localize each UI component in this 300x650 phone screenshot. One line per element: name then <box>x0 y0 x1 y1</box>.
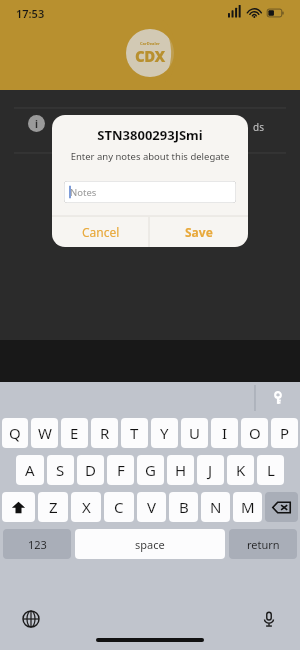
button[interactable]: E <box>61 418 88 448</box>
button[interactable]: J <box>197 455 224 485</box>
staticText: A <box>25 460 35 480</box>
button[interactable]: return <box>229 529 297 559</box>
button[interactable]: Z <box>38 492 68 522</box>
button[interactable]: Dictation <box>258 608 280 630</box>
button[interactable]: S <box>47 455 74 485</box>
staticText: STN3800293JSmi <box>52 126 248 144</box>
button[interactable]: K <box>227 455 254 485</box>
button[interactable]: Change keyboard <box>20 608 42 630</box>
staticText: U <box>189 423 200 443</box>
button[interactable]: space <box>75 529 225 559</box>
button[interactable]: I <box>211 418 238 448</box>
staticText: Notes <box>70 186 97 199</box>
button[interactable]: Q <box>2 418 28 448</box>
staticText: D <box>85 460 96 480</box>
button[interactable]: V <box>137 492 166 522</box>
button[interactable]: G <box>137 455 164 485</box>
button[interactable]: T <box>121 418 148 448</box>
staticText: T <box>130 423 139 443</box>
staticText: K <box>236 460 246 480</box>
staticText: I <box>222 423 228 443</box>
staticText: X <box>82 497 91 517</box>
staticText: G <box>145 460 156 480</box>
button[interactable]: F <box>107 455 134 485</box>
button[interactable]: L <box>257 455 284 485</box>
button[interactable]: Passwords <box>256 382 300 414</box>
staticText: E <box>70 423 79 443</box>
button[interactable]: H <box>167 455 194 485</box>
staticText: CarDealer <box>140 41 160 46</box>
staticText: O <box>249 423 261 443</box>
staticText: Q <box>9 423 21 443</box>
button[interactable]: Cancel <box>52 217 149 247</box>
button[interactable]: B <box>169 492 198 522</box>
staticText: space <box>135 537 165 552</box>
staticText: 123 <box>28 537 47 552</box>
button[interactable]: Delete <box>265 492 298 522</box>
button[interactable]: W <box>31 418 58 448</box>
button[interactable]: X <box>71 492 101 522</box>
button[interactable]: A <box>16 455 44 485</box>
button[interactable]: D <box>77 455 104 485</box>
staticText: J <box>208 460 213 480</box>
staticText: F <box>117 460 125 480</box>
staticText: P <box>280 423 290 443</box>
staticText: Enter any notes about this delegate <box>52 150 248 163</box>
staticText: M <box>241 497 255 517</box>
button[interactable]: M <box>233 492 262 522</box>
staticText: W <box>38 423 52 443</box>
staticText: Cancel <box>82 224 120 240</box>
staticText: Save <box>185 224 213 240</box>
button[interactable]: R <box>91 418 118 448</box>
button[interactable]: Shift <box>2 492 35 522</box>
button[interactable]: O <box>241 418 268 448</box>
button[interactable]: N <box>201 492 230 522</box>
staticText: 17:53 <box>16 6 45 21</box>
staticText: Y <box>160 423 169 443</box>
button[interactable]: Save <box>150 217 248 247</box>
staticText: N <box>210 497 222 517</box>
button[interactable]: P <box>271 418 298 448</box>
staticText: V <box>147 497 157 517</box>
staticText: S <box>56 460 65 480</box>
button[interactable]: Y <box>151 418 178 448</box>
button[interactable]: Notes <box>64 181 236 203</box>
staticText: i <box>35 117 38 131</box>
staticText: return <box>247 537 280 552</box>
staticText: R <box>100 423 110 443</box>
button[interactable]: Information <box>28 115 45 132</box>
staticText: Z <box>49 497 58 517</box>
staticText: H <box>175 460 187 480</box>
staticText: CDX <box>135 46 165 66</box>
button[interactable]: U <box>181 418 208 448</box>
staticText: C <box>114 497 124 517</box>
button[interactable]: C <box>104 492 134 522</box>
staticText: ds <box>253 120 264 134</box>
staticText: B <box>179 497 189 517</box>
staticText: L <box>267 460 275 480</box>
button[interactable]: 123 <box>3 529 71 559</box>
